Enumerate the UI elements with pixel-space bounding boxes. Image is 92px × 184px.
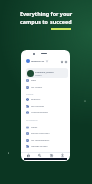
staticText: My Activity — [31, 86, 43, 89]
staticText: Student — [35, 74, 42, 76]
staticText: Manage Groups — [31, 145, 48, 148]
button[interactable]: Search — [37, 153, 42, 158]
staticText: Feed — [31, 79, 36, 82]
button[interactable]: Announcements — [21, 109, 70, 115]
staticText: Tailwind CSS — [31, 60, 45, 63]
staticText: Announcements — [31, 111, 48, 114]
button[interactable]: My Appointments — [21, 137, 70, 143]
staticText: Wallet — [31, 126, 38, 129]
button[interactable]: Katherine Jackson — [26, 68, 68, 78]
button[interactable]: Partner Discounts — [21, 130, 70, 136]
staticText: campus to — [20, 18, 50, 25]
staticText: Directory — [31, 98, 41, 101]
button[interactable]: Settings — [64, 60, 67, 63]
button[interactable]: Wallet — [21, 124, 70, 130]
button[interactable]: Home — [26, 153, 31, 158]
staticText: Get Involved — [31, 105, 44, 108]
button[interactable]: My Activity — [21, 84, 70, 90]
staticText: Katherine Jackson — [35, 71, 54, 74]
staticText: Everything for your — [20, 10, 73, 17]
button[interactable]: Directory — [21, 96, 70, 102]
button[interactable]: Tailwind CSS — [21, 57, 70, 65]
button[interactable]: Get Involved — [21, 103, 70, 109]
staticText: MY ACCOUNT — [26, 119, 38, 121]
button[interactable]: Manage Groups — [21, 143, 70, 149]
button[interactable]: Groups — [49, 153, 54, 158]
staticText: My Appointments — [31, 139, 50, 142]
staticText: CAMPUS — [26, 93, 34, 95]
button[interactable]: Feed — [21, 77, 70, 83]
button[interactable]: Notifications — [60, 60, 63, 63]
staticText: Partner Discounts — [31, 132, 50, 135]
button[interactable]: Profile — [60, 153, 65, 158]
staticText: succeed — [50, 18, 72, 25]
